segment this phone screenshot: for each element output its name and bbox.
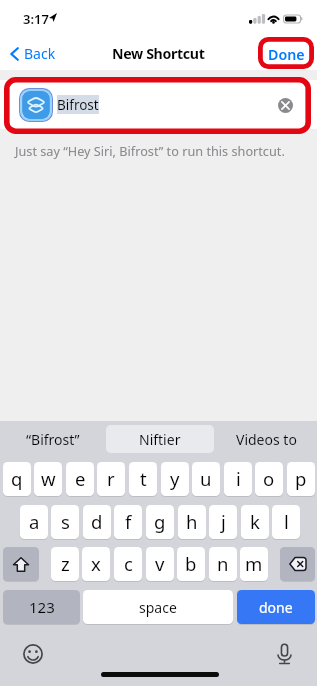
button[interactable]: b	[177, 547, 205, 581]
staticText: l	[284, 509, 289, 534]
staticText: w	[41, 466, 56, 491]
button[interactable]: r	[97, 462, 125, 496]
button[interactable]: p	[287, 462, 315, 496]
button[interactable]: n	[209, 547, 237, 581]
staticText: p	[295, 466, 307, 491]
staticText: c	[124, 551, 133, 576]
button[interactable]: z	[51, 547, 79, 581]
staticText: t	[140, 466, 147, 491]
button[interactable]: u	[192, 462, 220, 496]
button[interactable]: i	[224, 462, 252, 496]
button[interactable]: done	[237, 590, 315, 624]
staticText: z	[61, 551, 70, 576]
staticText: New Shortcut	[112, 44, 205, 63]
button[interactable]: j	[209, 505, 237, 539]
staticText: 123	[29, 597, 55, 617]
staticText: s	[61, 509, 70, 534]
button[interactable]: g	[146, 505, 174, 539]
button[interactable]: space	[83, 590, 233, 624]
button[interactable]: Emoji keyboard	[20, 641, 46, 667]
button[interactable]: v	[146, 547, 174, 581]
staticText: space	[139, 598, 177, 617]
staticText: j	[221, 509, 226, 534]
staticText: h	[186, 509, 198, 534]
staticText: k	[250, 509, 260, 534]
staticText: Videos to	[236, 430, 297, 449]
button[interactable]: w	[34, 462, 62, 496]
staticText: n	[217, 551, 229, 576]
button[interactable]: c	[114, 547, 142, 581]
button[interactable]: e	[66, 462, 94, 496]
button[interactable]: Clear text	[272, 92, 298, 118]
staticText: x	[91, 551, 101, 576]
staticText: o	[263, 466, 275, 491]
staticText: g	[154, 509, 166, 534]
staticText: y	[170, 466, 180, 491]
button[interactable]: Dictation	[271, 641, 297, 667]
button[interactable]: a	[20, 505, 48, 539]
button[interactable]: m	[240, 547, 268, 581]
staticText: d	[91, 509, 103, 534]
staticText: Niftier	[139, 430, 181, 449]
staticText: a	[29, 509, 40, 534]
button[interactable]: “Bifrost”	[2, 424, 104, 454]
staticText: m	[245, 551, 263, 576]
button[interactable]: Delete	[280, 547, 315, 581]
button[interactable]: x	[82, 547, 110, 581]
button[interactable]: t	[129, 462, 157, 496]
button[interactable]: h	[178, 505, 206, 539]
staticText: b	[185, 551, 197, 576]
button[interactable]: l	[272, 505, 300, 539]
button[interactable]: Done	[262, 42, 310, 66]
button[interactable]: f	[114, 505, 142, 539]
staticText: u	[200, 466, 212, 491]
button[interactable]: d	[83, 505, 111, 539]
staticText: v	[155, 551, 165, 576]
staticText: Done	[268, 45, 305, 64]
staticText: q	[11, 466, 23, 491]
button[interactable]: o	[255, 462, 283, 496]
button[interactable]: s	[51, 505, 79, 539]
button[interactable]: Niftier	[106, 425, 214, 453]
button[interactable]: Videos to	[216, 424, 316, 454]
staticText: Bifrost	[57, 96, 99, 114]
staticText: f	[125, 509, 132, 534]
button[interactable]: Back	[6, 40, 62, 68]
staticText: Back	[24, 44, 56, 63]
staticText: “Bifrost”	[26, 430, 80, 449]
staticText: i	[236, 466, 241, 491]
staticText: r	[107, 466, 115, 491]
staticText: done	[259, 598, 293, 617]
button[interactable]: y	[161, 462, 189, 496]
button[interactable]: Bifrost	[0, 80, 317, 129]
staticText: Just say “Hey Siri, Bifrost” to run this…	[15, 142, 285, 159]
button[interactable]: Shift	[3, 547, 39, 581]
button[interactable]: k	[241, 505, 269, 539]
button[interactable]: 123	[3, 590, 80, 624]
staticText: 3:17	[23, 10, 49, 28]
button[interactable]: q	[3, 462, 31, 496]
staticText: e	[75, 466, 86, 491]
